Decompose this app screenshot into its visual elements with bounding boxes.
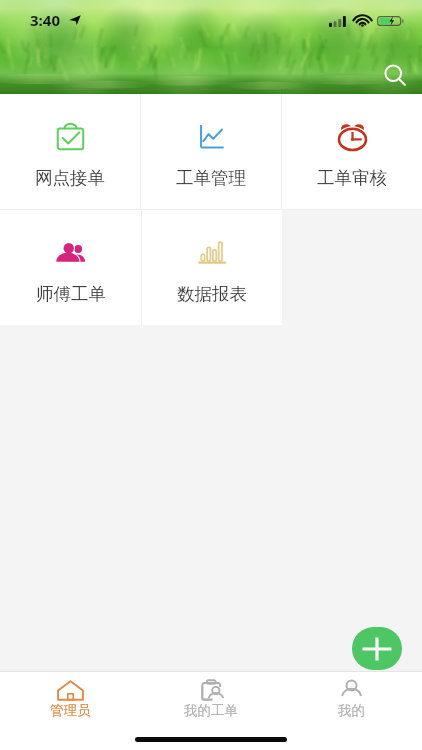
button[interactable]: 我的 bbox=[281, 672, 422, 730]
staticText: 数据报表 bbox=[177, 283, 247, 305]
button[interactable]: 网点接单 bbox=[0, 94, 140, 209]
staticText: 师傅工单 bbox=[36, 283, 106, 305]
staticText: 3:40 bbox=[30, 10, 60, 30]
staticText: 我的工单 bbox=[184, 702, 238, 719]
staticText: 管理员 bbox=[50, 702, 91, 719]
staticText: 我的 bbox=[338, 702, 365, 719]
button[interactable]: 工单管理 bbox=[141, 94, 281, 209]
staticText: 网点接单 bbox=[35, 167, 105, 189]
button[interactable]: 管理员 bbox=[0, 672, 140, 730]
staticText: 工单管理 bbox=[176, 167, 246, 189]
button[interactable]: Add bbox=[352, 627, 402, 670]
button[interactable]: Search bbox=[377, 57, 413, 93]
button[interactable]: 数据报表 bbox=[142, 210, 282, 325]
staticText: 工单审核 bbox=[317, 167, 387, 189]
button[interactable]: 我的工单 bbox=[140, 672, 281, 730]
button[interactable]: 师傅工单 bbox=[0, 210, 141, 325]
button[interactable]: 工单审核 bbox=[282, 94, 422, 209]
